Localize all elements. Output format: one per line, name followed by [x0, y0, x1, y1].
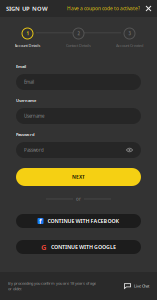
- button[interactable]: Email: [16, 74, 141, 90]
- button[interactable]: Live Chat: [124, 283, 149, 289]
- button[interactable]: Username: [16, 108, 141, 124]
- staticText: Account Created: [116, 43, 143, 48]
- staticText: Have a coupon code to activate?: [67, 5, 140, 12]
- staticText: SIGN UP NOW: [6, 4, 48, 12]
- staticText: Email: [16, 64, 26, 69]
- button[interactable]: NEXT: [16, 168, 141, 186]
- staticText: CONTINUE WITH FACEBOOK: [47, 217, 119, 225]
- staticText: Password: [16, 132, 35, 137]
- staticText: f: [39, 216, 42, 226]
- staticText: 2: [77, 31, 79, 36]
- staticText: Email: [24, 79, 34, 85]
- button[interactable]: f: [16, 214, 141, 228]
- staticText: Username: [16, 98, 36, 103]
- staticText: By proceeding you confirm you are 18 yea…: [8, 281, 96, 291]
- button[interactable]: Have a coupon code to activate?: [67, 5, 140, 12]
- staticText: Username: [24, 113, 44, 119]
- staticText: G: [41, 242, 47, 252]
- button[interactable]: Close: [146, 6, 151, 11]
- staticText: Account Details: [14, 43, 40, 48]
- staticText: Password: [24, 147, 44, 153]
- button[interactable]: G: [16, 240, 141, 254]
- staticText: 3: [128, 31, 130, 36]
- staticText: or: [76, 196, 81, 202]
- staticText: 1: [26, 31, 28, 36]
- staticText: Contact Details: [66, 43, 91, 48]
- staticText: Live Chat: [134, 283, 149, 289]
- staticText: NEXT: [72, 174, 85, 180]
- staticText: CONTINUE WITH GOOGLE: [51, 243, 116, 251]
- button[interactable]: Password: [16, 142, 141, 158]
